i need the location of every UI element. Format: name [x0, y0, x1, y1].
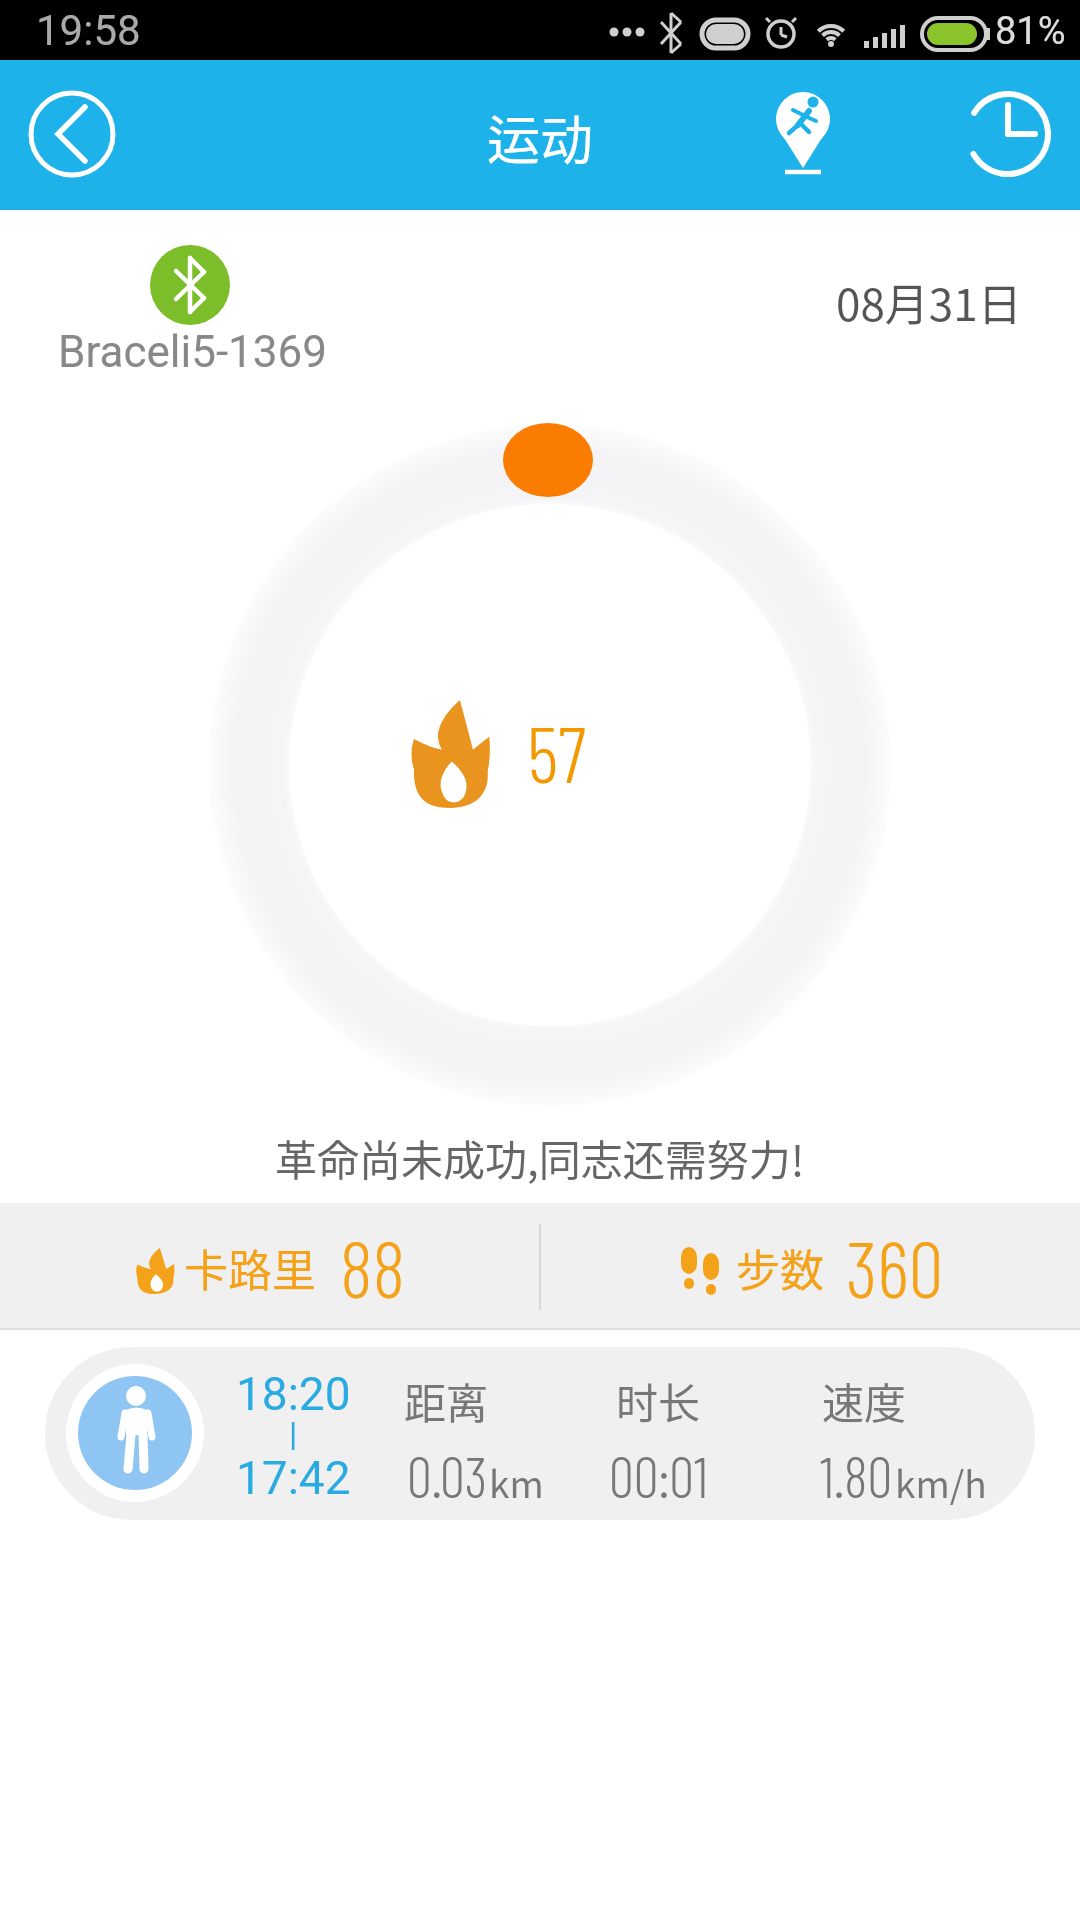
staticText: km — [489, 1455, 544, 1509]
staticText: 360 — [846, 1220, 944, 1314]
button[interactable] — [45, 1347, 1035, 1520]
staticText: Braceli5-1369 — [58, 326, 327, 378]
staticText: 速度 — [822, 1370, 907, 1431]
staticText: 步数 — [736, 1236, 824, 1300]
staticText: 距离 — [404, 1370, 489, 1431]
staticText: 18:20 — [236, 1367, 351, 1421]
button[interactable] — [753, 80, 853, 180]
staticText: 0.03 — [407, 1442, 488, 1509]
staticText: km/h — [895, 1455, 987, 1509]
button[interactable] — [958, 84, 1058, 184]
staticText: 革命尚未成功,同志还需努力! — [275, 1127, 805, 1188]
staticText: 17:42 — [236, 1451, 351, 1505]
staticText: 88 — [340, 1220, 406, 1314]
staticText: 57 — [527, 705, 586, 799]
staticText: 00:01 — [609, 1442, 709, 1509]
staticText: 时长 — [616, 1370, 701, 1431]
button[interactable] — [0, 1203, 540, 1330]
staticText: 08月31日 — [836, 270, 1022, 334]
button[interactable] — [150, 245, 230, 325]
staticText: 1.80 — [820, 1442, 893, 1509]
staticText: | — [289, 1414, 298, 1454]
staticText: 81% — [995, 9, 1066, 54]
staticText: 19:58 — [36, 6, 141, 55]
staticText: 运动 — [487, 99, 593, 176]
button[interactable] — [540, 1203, 1080, 1330]
button[interactable] — [22, 84, 122, 184]
staticText: 卡路里 — [184, 1236, 316, 1300]
